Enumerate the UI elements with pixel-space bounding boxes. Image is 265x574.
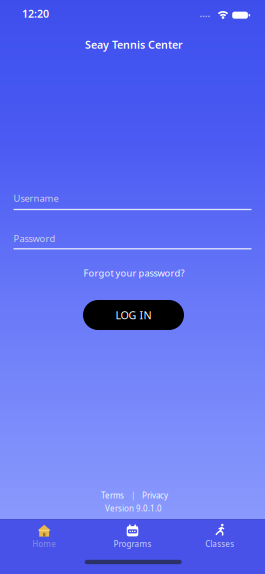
button[interactable]: Home bbox=[7, 519, 81, 549]
staticText: Forgot your password? bbox=[83, 267, 184, 279]
staticText: Terms bbox=[101, 490, 124, 501]
button[interactable]: Programs bbox=[95, 519, 169, 549]
button[interactable]: Privacy bbox=[142, 490, 168, 501]
staticText: Password bbox=[13, 232, 55, 245]
staticText: Version 9.0.1.0 bbox=[105, 503, 162, 514]
staticText: Classes bbox=[205, 538, 234, 549]
staticText: Home bbox=[32, 538, 56, 549]
button[interactable]: LOG IN bbox=[83, 300, 184, 330]
button[interactable]: Terms bbox=[101, 490, 124, 501]
staticText: Programs bbox=[113, 538, 151, 549]
staticText: | bbox=[131, 490, 135, 501]
staticText: Seay Tennis Center bbox=[85, 38, 183, 52]
staticText: LOG IN bbox=[115, 308, 151, 322]
staticText: Privacy bbox=[142, 490, 168, 501]
button[interactable]: Forgot your password? bbox=[83, 267, 184, 279]
button[interactable]: Classes bbox=[183, 519, 257, 549]
staticText: Username bbox=[13, 192, 58, 204]
staticText: 12:20 bbox=[22, 6, 49, 21]
